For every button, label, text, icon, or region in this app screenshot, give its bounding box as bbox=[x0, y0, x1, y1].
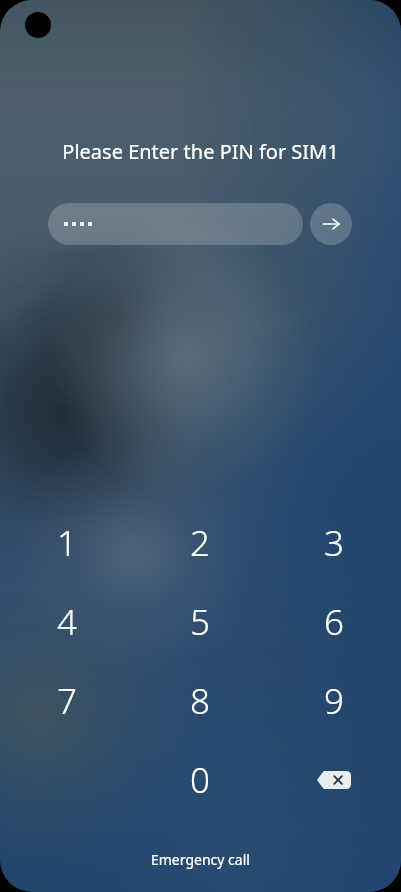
staticText: 8 bbox=[190, 677, 210, 725]
button[interactable] bbox=[48, 203, 303, 245]
staticText: 3 bbox=[324, 519, 344, 567]
button[interactable]: Emergency call bbox=[137, 845, 264, 874]
staticText: 6 bbox=[324, 598, 344, 646]
staticText: 2 bbox=[190, 519, 210, 567]
button[interactable]: 0 bbox=[133, 740, 267, 819]
button[interactable]: 9 bbox=[267, 661, 401, 740]
button[interactable]: 3 bbox=[267, 503, 401, 582]
button[interactable]: 1 bbox=[0, 503, 133, 582]
button[interactable]: 2 bbox=[133, 503, 267, 582]
button[interactable]: Submit PIN bbox=[310, 203, 352, 245]
staticText: 9 bbox=[324, 677, 344, 725]
button[interactable]: 7 bbox=[0, 661, 133, 740]
staticText: 0 bbox=[190, 756, 210, 804]
staticText: 4 bbox=[57, 598, 77, 646]
staticText: Please Enter the PIN for SIM1 bbox=[62, 138, 339, 165]
staticText: 1 bbox=[57, 519, 77, 567]
staticText: Emergency call bbox=[151, 850, 250, 869]
button[interactable]: 5 bbox=[133, 582, 267, 661]
button[interactable]: 4 bbox=[0, 582, 133, 661]
staticText: 5 bbox=[190, 598, 210, 646]
button[interactable]: 6 bbox=[267, 582, 401, 661]
staticText: 7 bbox=[57, 677, 77, 725]
button[interactable]: Backspace bbox=[267, 740, 401, 819]
button[interactable]: 8 bbox=[133, 661, 267, 740]
